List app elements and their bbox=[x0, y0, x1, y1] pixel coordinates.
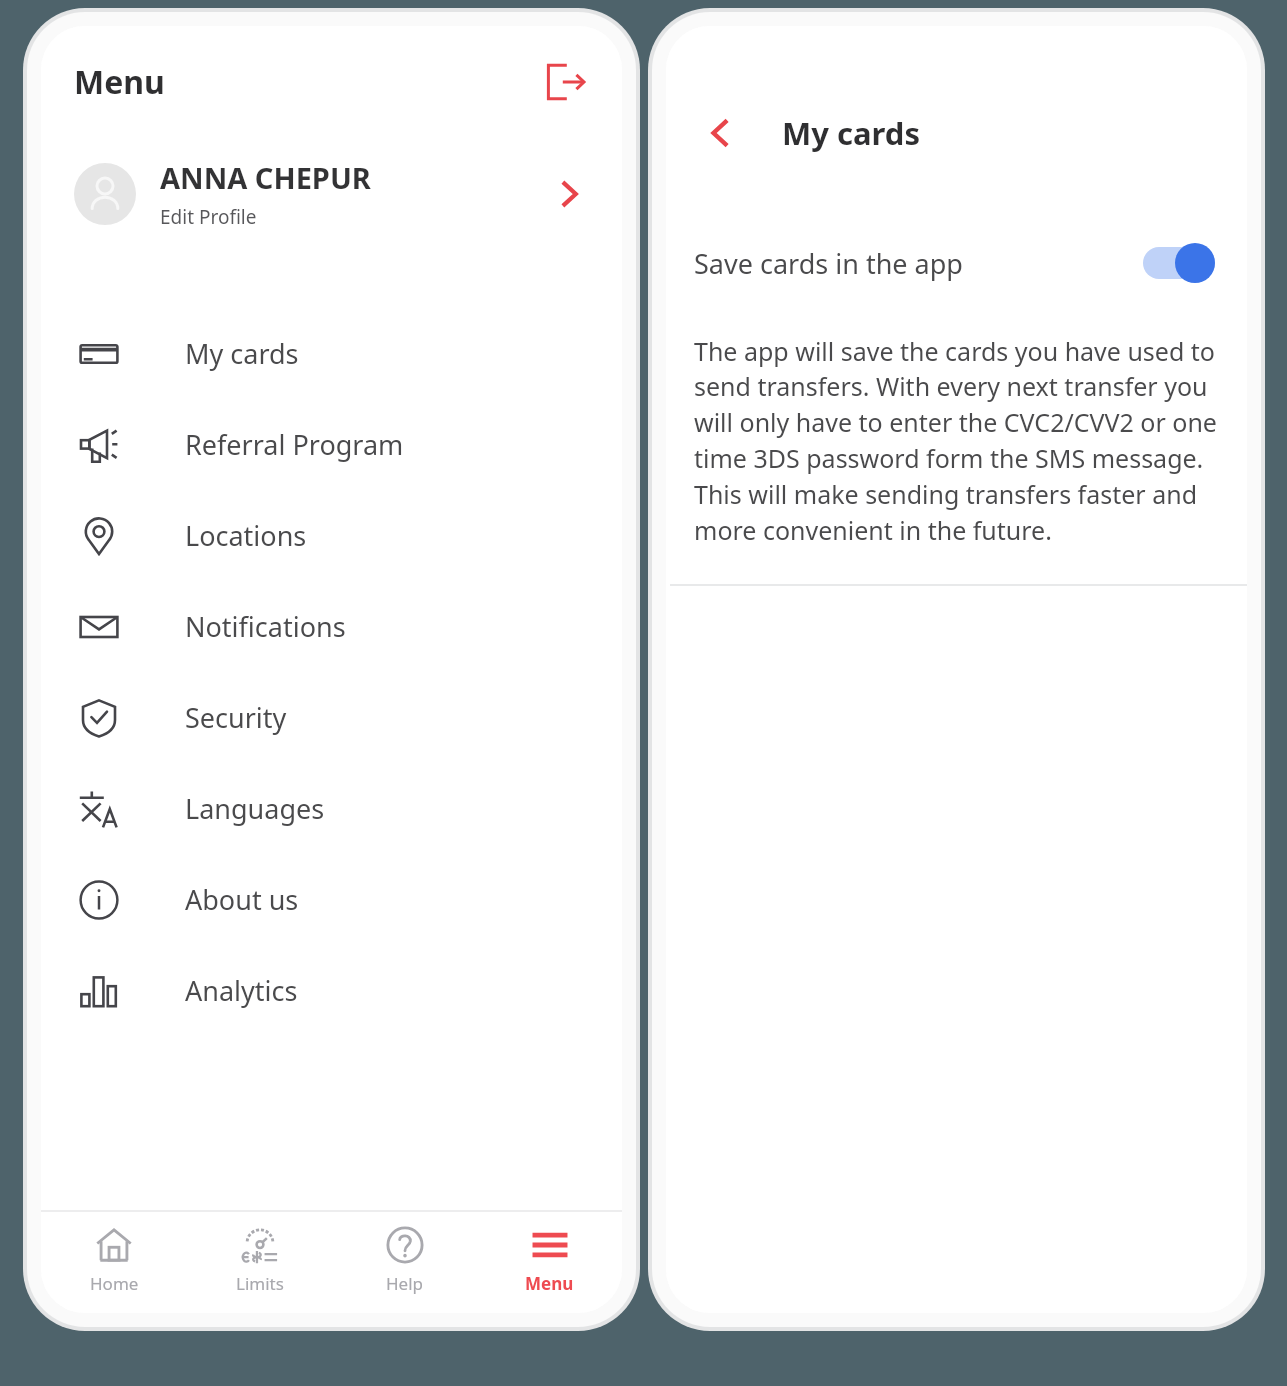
button[interactable]: About us bbox=[41, 854, 622, 945]
staticText: My cards bbox=[185, 335, 299, 372]
button[interactable]: Notifications bbox=[41, 581, 622, 672]
staticText: Locations bbox=[185, 517, 307, 554]
button[interactable]: ANNA CHEPUR bbox=[41, 138, 622, 250]
button[interactable]: Menu bbox=[477, 1212, 622, 1307]
staticText: Help bbox=[386, 1272, 424, 1295]
staticText: Notifications bbox=[185, 608, 346, 645]
staticText: Home bbox=[90, 1272, 139, 1295]
staticText: Save cards in the app bbox=[694, 245, 963, 282]
staticText: Limits bbox=[236, 1272, 284, 1295]
staticText: Edit Profile bbox=[160, 204, 257, 230]
staticText: ANNA CHEPUR bbox=[160, 158, 371, 197]
button[interactable]: Log out bbox=[540, 56, 592, 108]
button[interactable]: Locations bbox=[41, 490, 622, 581]
button[interactable]: Save cards in the app bbox=[666, 232, 1247, 294]
button[interactable]: Languages bbox=[41, 763, 622, 854]
staticText: Referral Program bbox=[185, 426, 404, 463]
staticText: My cards bbox=[782, 112, 920, 154]
staticText: Menu bbox=[74, 60, 165, 104]
button[interactable]: Save cards in the app toggle bbox=[1143, 243, 1215, 283]
staticText: Languages bbox=[185, 790, 325, 827]
staticText: The app will save the cards you have use… bbox=[694, 334, 1221, 548]
button[interactable]: Help bbox=[332, 1212, 477, 1307]
staticText: Analytics bbox=[185, 972, 298, 1009]
staticText: Menu bbox=[525, 1272, 574, 1295]
button[interactable]: Security bbox=[41, 672, 622, 763]
button[interactable]: Limits bbox=[187, 1212, 332, 1307]
button[interactable]: Analytics bbox=[41, 945, 622, 1036]
button[interactable]: Home bbox=[41, 1212, 187, 1307]
button[interactable]: Referral Program bbox=[41, 399, 622, 490]
staticText: Security bbox=[185, 699, 287, 736]
staticText: About us bbox=[185, 881, 299, 918]
button[interactable]: My cards bbox=[41, 308, 622, 399]
button[interactable]: Back bbox=[694, 106, 748, 160]
